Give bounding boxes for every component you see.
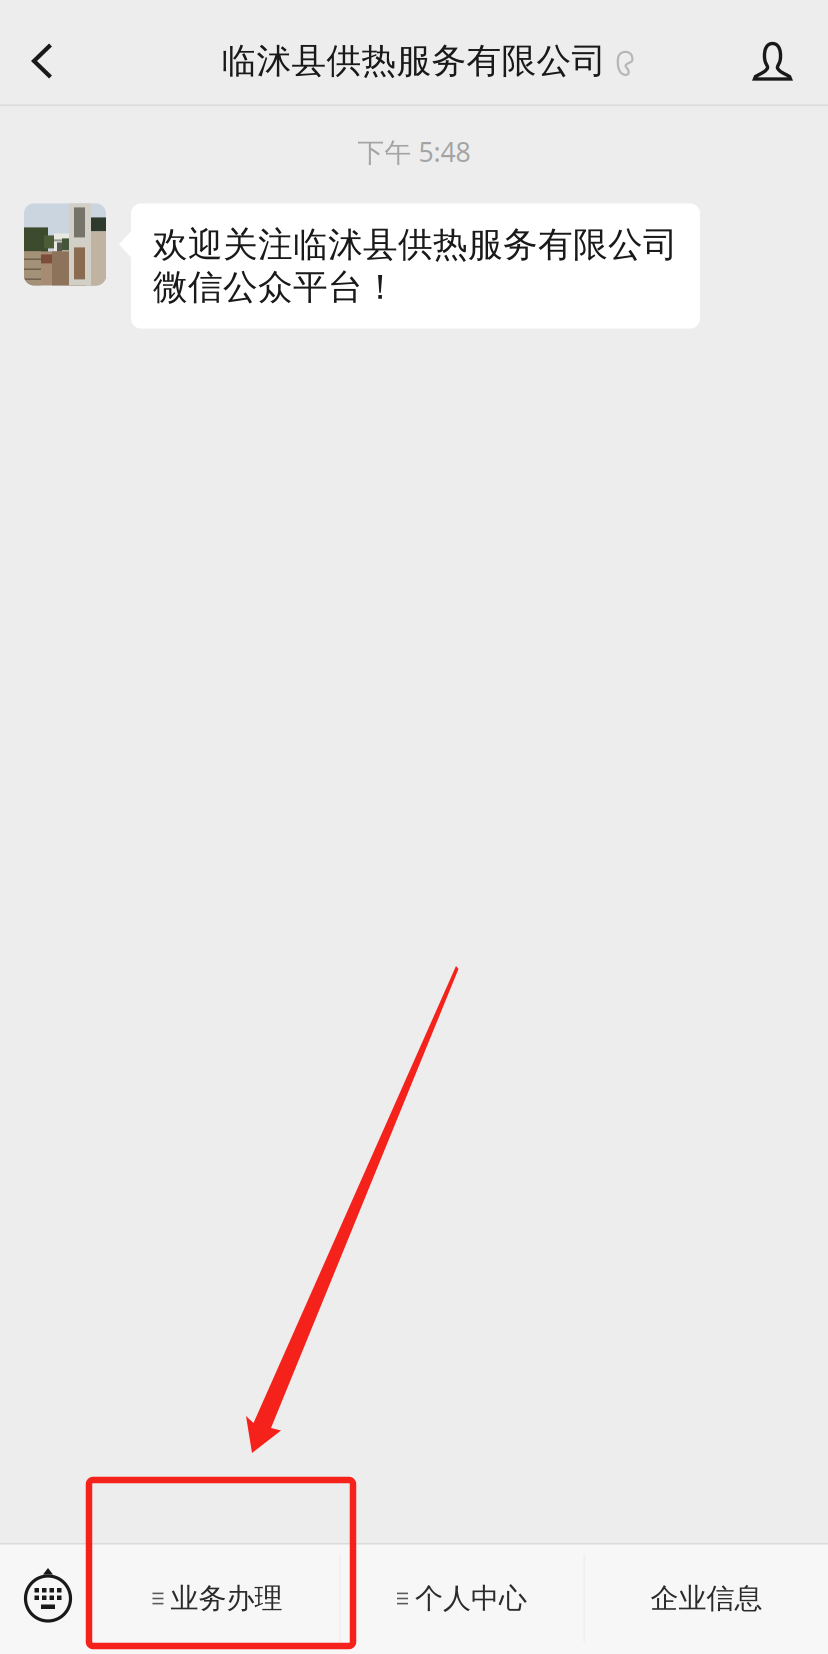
button[interactable]: Contact profile — [717, 8, 828, 113]
staticText: 个人中心 — [415, 1581, 527, 1616]
button[interactable]: 业务办理 — [96, 1543, 339, 1654]
staticText: 下午 5:48 — [357, 134, 470, 169]
staticText: 欢迎关注临沭县供热服务有限公司 微信公众平台！ — [153, 223, 678, 309]
staticText: 临沭县供热服务有限公司 — [221, 40, 606, 82]
button[interactable]: Switch to keyboard — [0, 1543, 96, 1654]
button[interactable]: 个人中心 — [340, 1543, 583, 1654]
button[interactable]: 企业信息 — [585, 1543, 828, 1654]
staticText: 企业信息 — [650, 1581, 762, 1616]
button[interactable]: Back — [0, 8, 84, 113]
staticText: 业务办理 — [170, 1581, 282, 1616]
